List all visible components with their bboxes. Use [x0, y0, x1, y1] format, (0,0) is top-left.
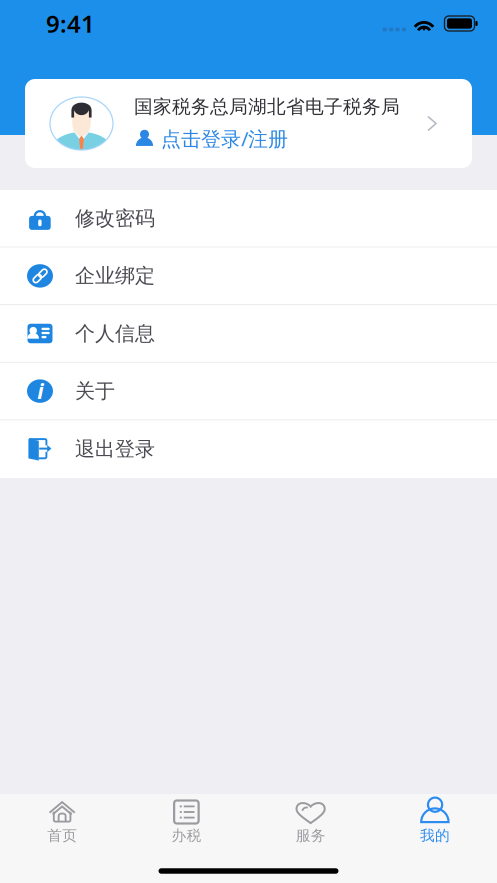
- staticText: 国家税务总局湖北省电子税务局: [134, 95, 400, 118]
- button[interactable]: 个人信息: [0, 305, 497, 363]
- staticText: 我的: [420, 826, 450, 844]
- staticText: 首页: [47, 826, 77, 844]
- staticText: 9:41: [46, 8, 95, 39]
- staticText: 点击登录/注册: [161, 125, 288, 152]
- button[interactable]: i: [0, 363, 497, 420]
- staticText: 办税: [171, 826, 201, 844]
- staticText: 企业绑定: [75, 264, 155, 288]
- staticText: i: [37, 376, 43, 405]
- button[interactable]: 首页: [0, 791, 124, 851]
- staticText: 服务: [296, 826, 326, 844]
- button[interactable]: 办税: [124, 791, 248, 851]
- button[interactable]: 服务: [248, 791, 373, 851]
- button[interactable]: 退出登录: [0, 420, 497, 478]
- staticText: 修改密码: [75, 206, 155, 231]
- button[interactable]: 修改密码: [0, 190, 497, 248]
- button[interactable]: 企业绑定: [0, 248, 497, 305]
- staticText: 退出登录: [75, 437, 155, 461]
- staticText: 个人信息: [75, 321, 155, 346]
- button[interactable]: 国家税务总局湖北省电子税务局: [25, 79, 472, 168]
- button[interactable]: 我的: [373, 791, 497, 851]
- staticText: 关于: [75, 379, 115, 403]
